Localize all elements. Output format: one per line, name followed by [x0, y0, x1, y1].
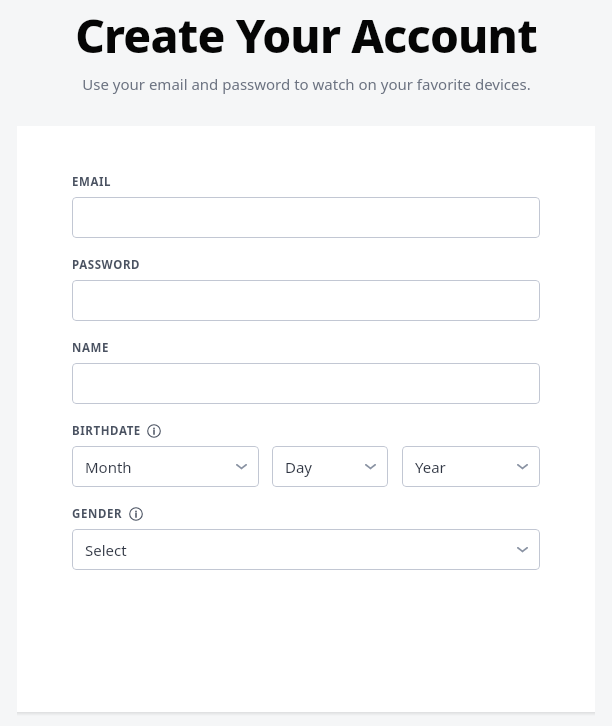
button[interactable]: Month	[72, 446, 259, 487]
staticText: Month	[85, 457, 132, 477]
staticText: Select	[85, 540, 127, 560]
staticText: Day	[285, 457, 313, 477]
staticText: PASSWORD	[72, 257, 141, 273]
button[interactable]	[72, 363, 540, 404]
button[interactable]: Select	[72, 529, 540, 570]
button[interactable]: More information	[147, 424, 161, 438]
button[interactable]: More information	[129, 507, 143, 521]
button[interactable]	[72, 197, 540, 238]
button[interactable]	[72, 280, 540, 321]
button[interactable]: Day	[272, 446, 388, 487]
staticText: Year	[415, 457, 446, 477]
button[interactable]: Year	[402, 446, 540, 487]
staticText: BIRTHDATE	[72, 423, 141, 439]
staticText: Use your email and password to watch on …	[82, 74, 531, 94]
staticText: EMAIL	[72, 174, 112, 190]
staticText: Create Your Account	[75, 4, 537, 67]
staticText: GENDER	[72, 506, 123, 522]
staticText: NAME	[72, 340, 109, 356]
